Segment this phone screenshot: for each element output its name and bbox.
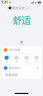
button[interactable]: 今日提醒 xyxy=(2,46,41,54)
staticText: 空气 xyxy=(6,61,8,62)
button[interactable]: 夜间模式 xyxy=(2,64,41,72)
staticText: 舒适 xyxy=(12,15,30,26)
button[interactable]: 湿度 xyxy=(21,56,31,62)
button[interactable]: 查看全部 xyxy=(4,73,19,76)
staticText: 湿度 xyxy=(25,61,27,62)
button[interactable]: 空气 xyxy=(2,56,11,62)
staticText: 查看全部 xyxy=(6,73,18,77)
staticText: 每日关怀 · 保持舒适生活 xyxy=(13,6,29,10)
button[interactable]: 每日关怀 · 保持舒适生活 xyxy=(7,6,32,10)
staticText: 温度 xyxy=(15,61,17,62)
staticText: 9:41 xyxy=(1,1,8,4)
button[interactable]: 光照 xyxy=(31,56,41,62)
button[interactable]: 温度 xyxy=(11,56,21,62)
staticText: 今日提醒 xyxy=(9,48,21,52)
staticText: › xyxy=(38,48,39,52)
staticText: 光照 xyxy=(35,61,37,62)
staticText: 夜间模式 xyxy=(9,66,21,70)
